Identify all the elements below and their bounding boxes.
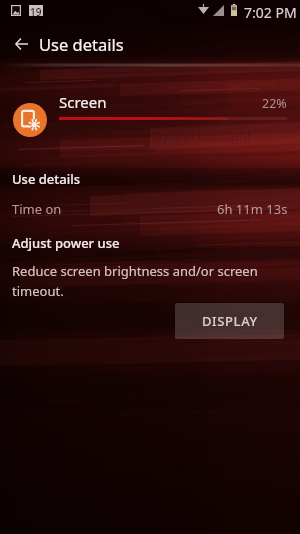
staticText: 7:02 PM [244, 3, 297, 22]
staticText: DISPLAY [202, 312, 258, 330]
staticText: 19 [30, 5, 42, 16]
staticText: Use details [39, 33, 124, 55]
staticText: 6h 11m 13s [217, 200, 288, 218]
button[interactable]: Screen [13, 103, 47, 137]
staticText: Use details [12, 170, 81, 188]
staticText: Reduce screen brightness and/or screen t… [12, 262, 264, 300]
button[interactable]: DISPLAY [175, 303, 284, 339]
staticText: Time on [12, 200, 62, 218]
staticText: lay and backlight [152, 128, 252, 145]
staticText: 22% [262, 95, 287, 112]
staticText: Adjust power use [12, 234, 120, 252]
staticText: Screen [59, 92, 107, 112]
button[interactable]: Back [3, 26, 39, 62]
button[interactable]: Time on [0, 196, 300, 222]
